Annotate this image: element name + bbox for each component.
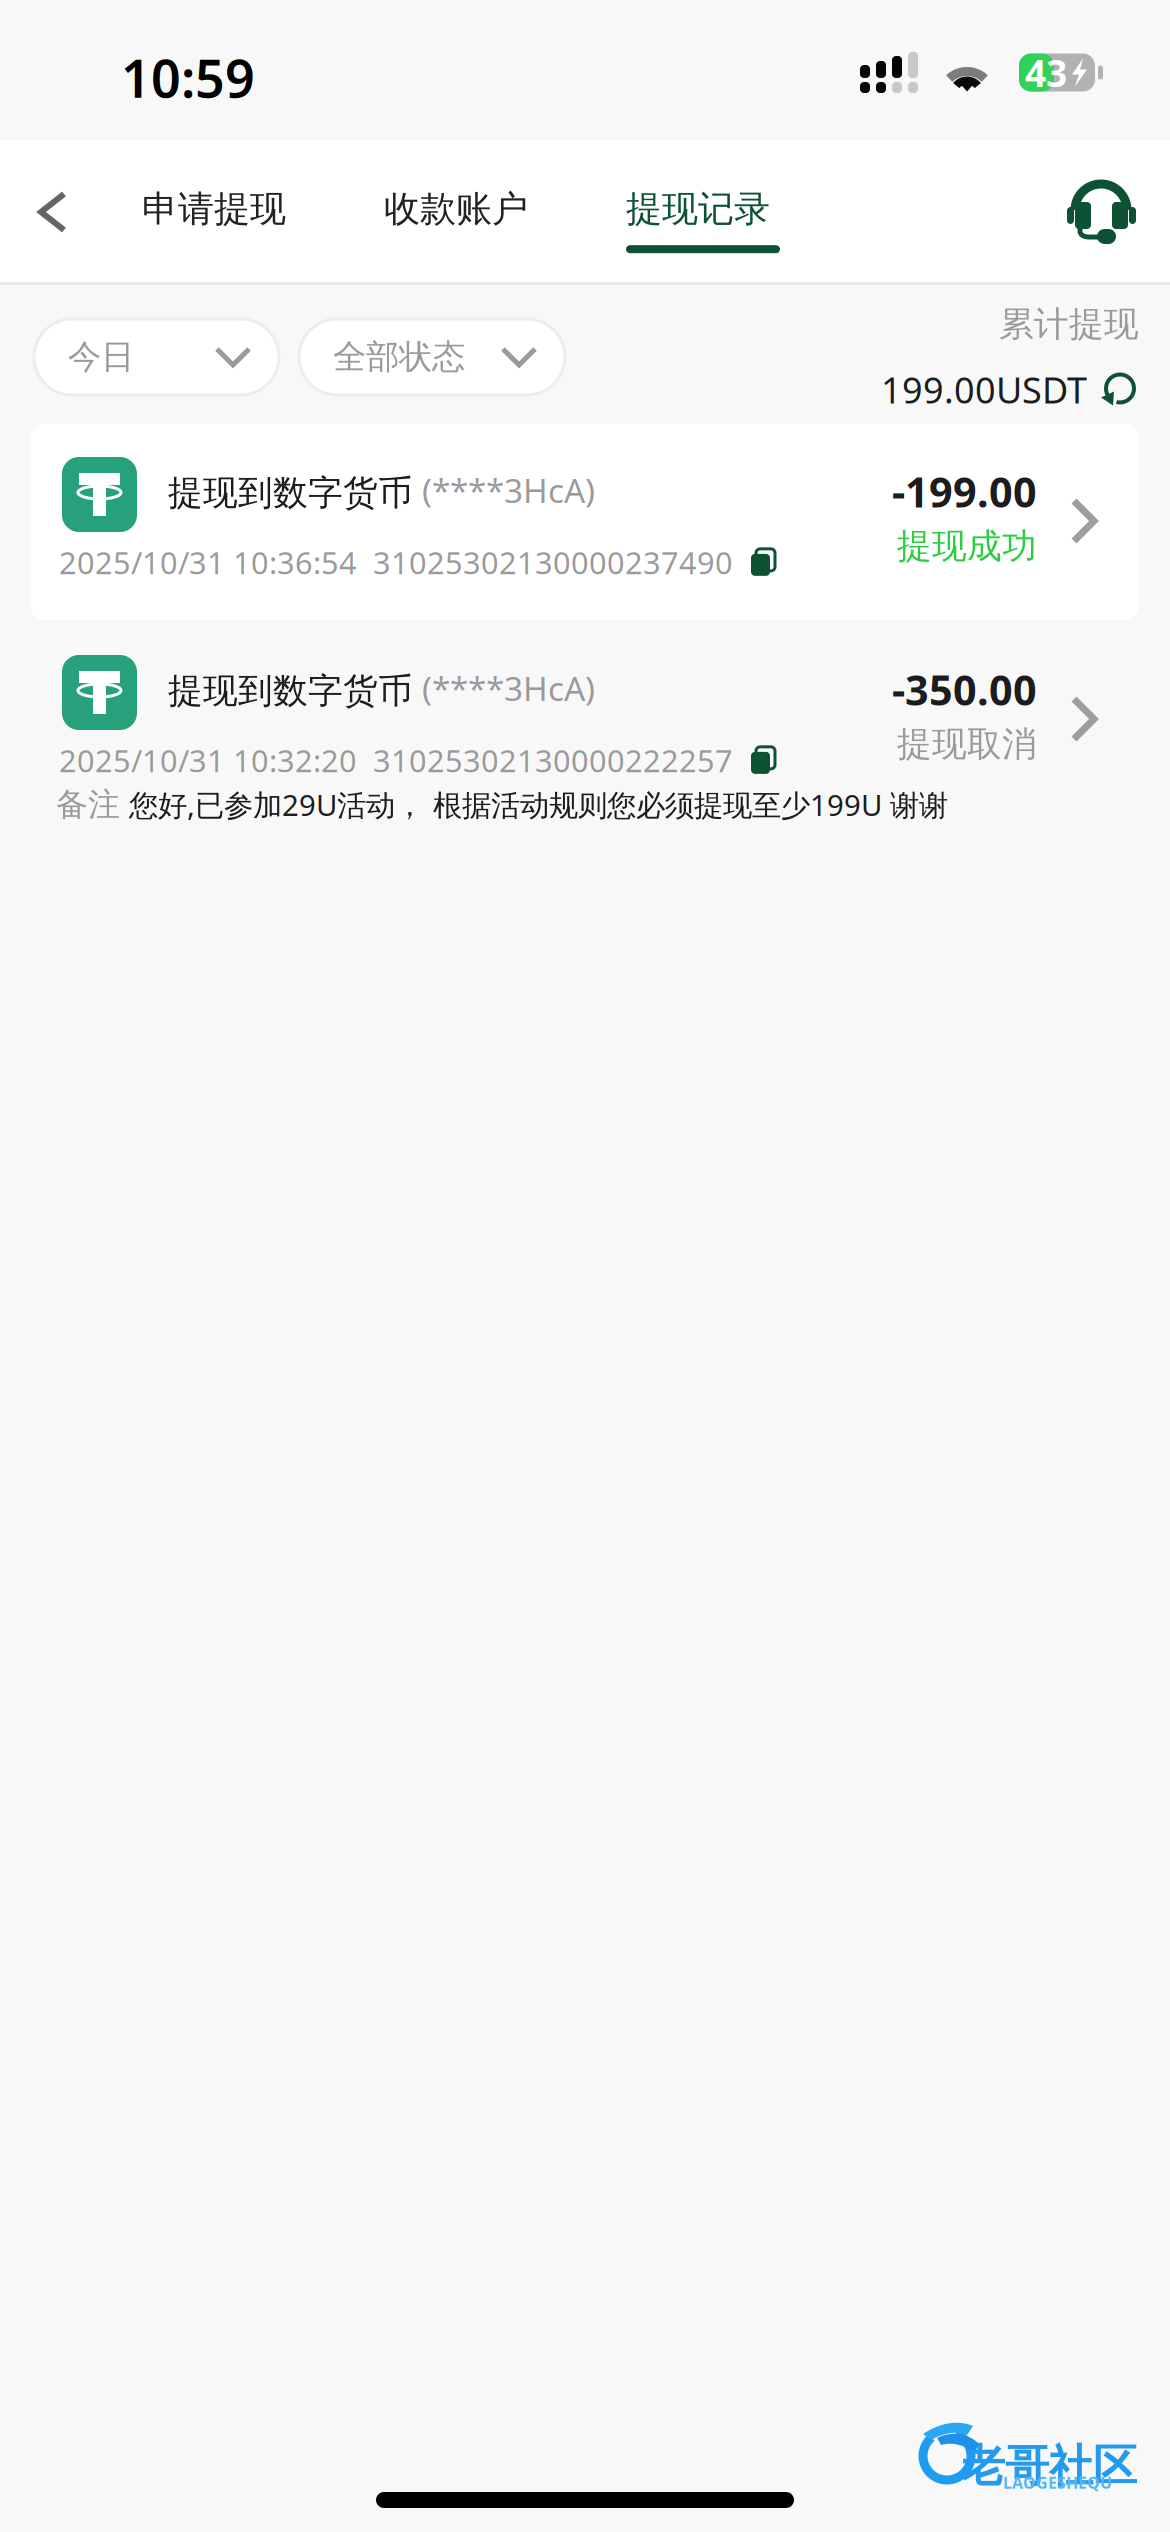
button[interactable]: Back: [38, 191, 67, 233]
button[interactable]: 提现到数字货币: [31, 622, 1139, 852]
staticText: 提现到数字货币: [168, 670, 413, 712]
staticText: -350.00: [892, 662, 1037, 717]
staticText: 提现取消: [897, 723, 1037, 766]
staticText: 2025/10/31 10:36:54 31025302130000237490: [59, 542, 733, 583]
staticText: 43: [1025, 48, 1067, 97]
staticText: LAOGESHEQU: [1003, 2472, 1112, 2493]
staticText: 全部状态: [333, 336, 465, 377]
button[interactable]: 收款账户: [384, 177, 538, 253]
staticText: 2025/10/31 10:32:20 31025302130000222257: [59, 740, 733, 781]
button[interactable]: 提现记录: [626, 177, 780, 253]
button[interactable]: 申请提现: [142, 177, 296, 253]
staticText: 199.00USDT: [881, 366, 1087, 413]
staticText: 提现记录: [626, 187, 770, 231]
staticText: -199.00: [892, 464, 1037, 519]
button[interactable]: Refresh: [1101, 370, 1139, 408]
staticText: 申请提现: [142, 187, 286, 231]
button[interactable]: 提现到数字货币: [31, 424, 1139, 620]
staticText: 收款账户: [384, 187, 528, 231]
staticText: 老哥社区: [961, 2439, 1137, 2493]
button[interactable]: 今日: [34, 319, 279, 395]
staticText: 您好,已参加29U活动， 根据活动规则您必须提现至少199U 谢谢: [120, 785, 948, 824]
staticText: 累计提现: [999, 303, 1139, 346]
staticText: 今日: [68, 336, 134, 377]
staticText: 提现成功: [897, 525, 1037, 568]
staticText: 备注: [56, 785, 120, 824]
staticText: (****3HcA): [413, 666, 595, 710]
staticText: 提现到数字货币: [168, 472, 413, 514]
staticText: 10:59: [121, 43, 255, 112]
button[interactable]: Customer service: [1067, 177, 1136, 240]
staticText: (****3HcA): [413, 468, 595, 512]
button[interactable]: 全部状态: [299, 319, 565, 395]
